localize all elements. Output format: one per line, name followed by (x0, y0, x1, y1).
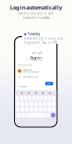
button[interactable]: Pulsebly (22, 31, 60, 44)
staticText: e (41, 51, 43, 54)
staticText: Sign in (30, 55, 41, 60)
staticText: Log in automatically (10, 4, 62, 11)
staticText: Forgot email? (18, 86, 27, 88)
staticText: whether you sign in with (18, 12, 54, 15)
staticText: to continue to Pulsebly (29, 59, 43, 61)
staticText: passwords or passkeys (22, 16, 49, 19)
staticText: Seamlessly log in using your (24, 37, 63, 40)
button[interactable]: Alex Morgan (15, 68, 56, 74)
button[interactable]: Forgot email? (18, 86, 27, 88)
staticText: Alex Morgan (23, 69, 32, 71)
staticText: o (36, 51, 38, 54)
staticText: fingerprint, face or PIN. (24, 41, 58, 44)
staticText: Choose an account (18, 64, 32, 66)
staticText: g (38, 51, 40, 54)
staticText: alex.morgan@gmail.com (23, 71, 39, 73)
staticText: l (40, 51, 41, 54)
staticText: Use another account (23, 76, 38, 78)
staticText: Pulsebly (27, 32, 39, 36)
staticText: G (32, 51, 34, 54)
button[interactable]: Use another account (15, 74, 56, 80)
staticText: o (34, 51, 36, 54)
staticText: Next (47, 83, 51, 84)
button[interactable]: Next (45, 82, 53, 85)
